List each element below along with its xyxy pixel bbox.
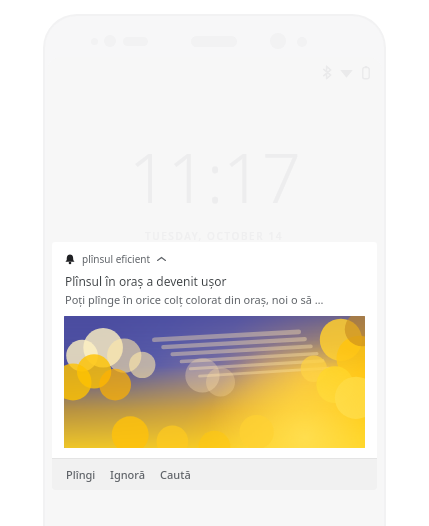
staticText: Caută: [160, 467, 191, 482]
staticText: Plîngi: [66, 467, 96, 482]
button[interactable]: Caută: [153, 461, 198, 488]
button[interactable]: Ignoră: [103, 461, 153, 488]
staticText: Poți plînge în orice colț colorat din or…: [65, 292, 324, 307]
staticText: plînsul eficient: [82, 252, 151, 266]
staticText: TUESDAY, OCTOBER 14: [145, 229, 284, 243]
staticText: Plînsul în oraș a devenit ușor: [65, 273, 227, 289]
staticText: Ignoră: [110, 467, 146, 482]
button[interactable]: plînsul eficient: [52, 242, 377, 268]
button[interactable]: Plîngi: [59, 461, 103, 488]
